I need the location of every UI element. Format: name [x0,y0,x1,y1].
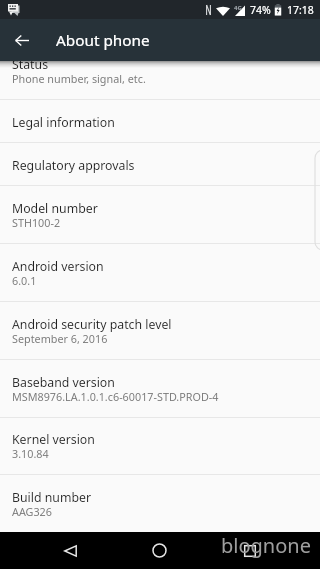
staticText: Android security patch level [12,316,172,333]
staticText: Phone number, signal, etc. [12,71,146,86]
button[interactable]: Model number [0,186,320,244]
staticText: About phone [56,30,150,51]
button[interactable]: Build number [0,475,320,533]
staticText: 74% [250,3,271,17]
button[interactable]: Android security patch level [0,302,320,360]
staticText: Status [12,56,49,73]
staticText: Android version [12,258,104,275]
button[interactable]: Back [0,19,44,61]
staticText: Model number [12,200,98,217]
staticText: 3.10.84 [12,446,49,461]
staticText: blognone [221,532,311,559]
button[interactable]: Home [137,532,182,569]
staticText: Legal information [12,114,115,131]
button[interactable]: Regulatory approvals [0,143,320,186]
button[interactable]: Baseband version [0,360,320,418]
staticText: Build number [12,489,91,506]
staticText: 17:18 [287,3,314,17]
staticText: Kernel version [12,431,95,448]
button[interactable]: Status [0,42,320,100]
button[interactable]: Recents [227,532,272,569]
staticText: AAG326 [12,504,52,519]
staticText: Regulatory approvals [12,157,135,174]
button[interactable]: Kernel version [0,418,320,475]
staticText: 4G [234,4,242,12]
staticText: STH100-2 [12,215,61,230]
staticText: September 6, 2016 [12,331,108,346]
staticText: Baseband version [12,374,115,391]
button[interactable]: Legal information [0,100,320,143]
staticText: MSM8976.LA.1.0.1.c6-60017-STD.PROD-4 [12,389,219,404]
staticText: 6.0.1 [12,273,37,288]
button[interactable]: Back [48,532,93,569]
button[interactable]: Android version [0,244,320,302]
